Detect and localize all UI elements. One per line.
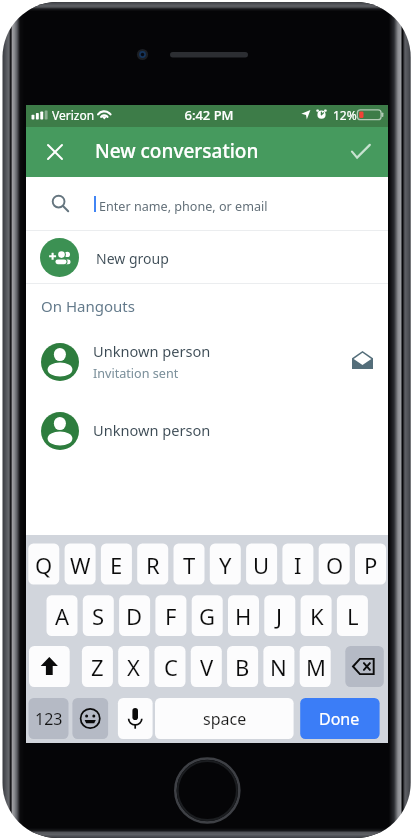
staticText: C (164, 652, 178, 682)
button[interactable]: F (155, 595, 186, 636)
staticText: P (364, 550, 378, 580)
staticText: Unknown person (93, 341, 211, 361)
button[interactable]: Voice input (118, 698, 153, 739)
staticText: 6:42 PM (28, 106, 390, 124)
staticText: S (92, 601, 105, 631)
staticText: T (183, 550, 196, 580)
button[interactable]: Enter name, phone, or email (26, 177, 388, 231)
button[interactable]: B (227, 646, 258, 687)
button[interactable]: E (101, 544, 132, 585)
button[interactable]: Done (300, 698, 379, 739)
staticText: F (165, 601, 177, 631)
staticText: On Hangouts (41, 296, 135, 316)
staticText: L (347, 601, 359, 631)
button[interactable]: W (65, 544, 96, 585)
button[interactable]: Unknown person (26, 327, 388, 396)
staticText: J (276, 601, 283, 631)
staticText: K (310, 601, 324, 631)
button[interactable]: J (264, 595, 295, 636)
button[interactable]: O (319, 544, 350, 585)
button[interactable]: X (118, 646, 149, 687)
staticText: Z (91, 652, 104, 682)
staticText: Verizon (52, 107, 95, 123)
staticText: space (203, 708, 247, 730)
button[interactable]: N (263, 646, 294, 687)
button[interactable]: Unknown person (26, 396, 388, 465)
button[interactable]: R (137, 544, 168, 585)
button[interactable]: Emoji (72, 698, 108, 739)
button[interactable]: T (174, 544, 205, 585)
staticText: New conversation (95, 138, 259, 164)
staticText: Invitation sent (93, 365, 179, 382)
button[interactable]: I (282, 544, 313, 585)
button[interactable]: V (191, 646, 222, 687)
button[interactable]: Shift (29, 646, 70, 687)
button[interactable]: Invitation sent (344, 343, 380, 379)
button[interactable]: Close (37, 134, 73, 170)
button[interactable]: K (301, 595, 332, 636)
staticText: New group (96, 249, 169, 268)
staticText: Done (319, 708, 360, 730)
button[interactable]: C (155, 646, 186, 687)
staticText: W (70, 550, 91, 580)
staticText: X (127, 652, 140, 682)
button[interactable]: Done (343, 136, 379, 172)
staticText: Unknown person (93, 420, 211, 440)
button[interactable]: D (119, 595, 150, 636)
staticText: B (235, 652, 250, 682)
button[interactable]: Q (28, 544, 59, 585)
button[interactable]: space (155, 698, 294, 739)
button[interactable]: 123 (29, 698, 69, 739)
button[interactable]: G (192, 595, 223, 636)
staticText: E (110, 550, 123, 580)
staticText: 123 (35, 708, 63, 730)
button[interactable]: New group (26, 231, 388, 284)
button[interactable]: L (337, 595, 368, 636)
staticText: R (146, 550, 160, 580)
staticText: Enter name, phone, or email (99, 198, 268, 215)
staticText: H (235, 601, 252, 631)
staticText: I (294, 550, 302, 580)
staticText: Y (219, 550, 232, 580)
button[interactable]: H (228, 595, 259, 636)
button[interactable]: Z (82, 646, 113, 687)
button[interactable]: Y (210, 544, 241, 585)
staticText: A (55, 601, 70, 631)
button[interactable]: U (246, 544, 277, 585)
staticText: G (199, 601, 216, 631)
staticText: U (253, 550, 270, 580)
button[interactable]: P (355, 544, 386, 585)
staticText: D (126, 601, 143, 631)
staticText: Q (35, 550, 53, 580)
button[interactable]: M (300, 646, 331, 687)
staticText: O (326, 550, 344, 580)
staticText: 12% (333, 107, 357, 123)
button[interactable]: Backspace (345, 646, 384, 687)
staticText: V (200, 652, 214, 682)
button[interactable]: S (83, 595, 114, 636)
button[interactable]: A (47, 595, 78, 636)
staticText: M (306, 652, 326, 682)
staticText: N (270, 652, 287, 682)
